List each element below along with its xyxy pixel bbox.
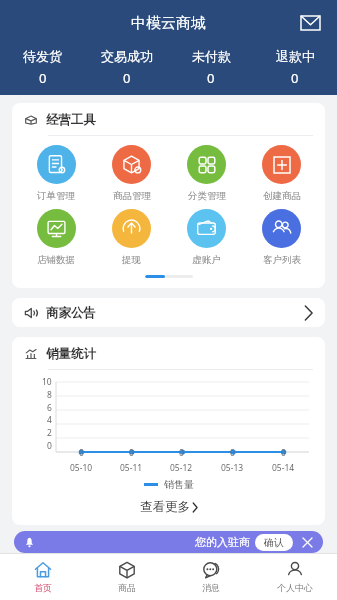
staticText: 店铺数据 — [37, 254, 75, 266]
button[interactable]: 商品管理 — [94, 145, 169, 202]
staticText: 0 — [291, 69, 299, 87]
button[interactable]: Messages — [293, 6, 327, 40]
button[interactable]: 查看更多 — [12, 497, 325, 517]
button[interactable]: 首页 — [0, 554, 85, 600]
staticText: 商品管理 — [113, 190, 151, 202]
staticText: 05-10 — [70, 462, 93, 474]
staticText: 待发货 — [23, 48, 62, 64]
staticText: 商品 — [118, 582, 136, 593]
button[interactable]: 您的入驻商 — [14, 531, 323, 553]
staticText: 消息 — [202, 582, 220, 593]
staticText: 您的入驻商 — [195, 535, 250, 549]
button[interactable]: 退款中 — [253, 48, 337, 87]
staticText: 6 — [47, 402, 52, 414]
button[interactable]: 确认 — [255, 534, 293, 551]
staticText: 提现 — [122, 254, 141, 266]
staticText: 客户列表 — [263, 254, 301, 266]
staticText: 05-12 — [170, 462, 193, 474]
staticText: 0 — [47, 440, 52, 452]
staticText: 确认 — [264, 536, 284, 549]
staticText: 交易成功 — [101, 48, 153, 64]
staticText: 0 — [39, 69, 47, 87]
staticText: 05-14 — [272, 462, 295, 474]
button[interactable]: 提现 — [94, 209, 169, 266]
button[interactable]: 个人中心 — [253, 554, 337, 600]
button[interactable]: 待发货 — [0, 48, 85, 87]
button[interactable]: 店铺数据 — [18, 209, 94, 266]
staticText: 首页 — [34, 582, 52, 593]
staticText: 05-11 — [120, 462, 143, 474]
button[interactable]: 交易成功 — [85, 48, 169, 87]
button[interactable]: 商品 — [85, 554, 169, 600]
button[interactable]: 分类管理 — [169, 145, 244, 202]
staticText: 0 — [179, 447, 184, 459]
staticText: 0 — [123, 69, 131, 87]
button[interactable]: Close — [299, 534, 315, 550]
button[interactable]: 客户列表 — [244, 209, 319, 266]
staticText: 查看更多 — [140, 499, 190, 515]
staticText: 0 — [79, 447, 84, 459]
staticText: 销售量 — [164, 478, 194, 491]
staticText: 虚账户 — [192, 254, 221, 266]
staticText: 销量统计 — [46, 346, 96, 362]
staticText: 中模云商城 — [131, 14, 206, 33]
button[interactable]: 虚账户 — [169, 209, 244, 266]
staticText: 10 — [42, 376, 52, 388]
button[interactable]: 消息 — [169, 554, 253, 600]
staticText: 个人中心 — [277, 582, 313, 593]
staticText: 0 — [129, 447, 134, 459]
button[interactable]: 未付款 — [169, 48, 253, 87]
staticText: 退款中 — [276, 48, 315, 64]
staticText: 经营工具 — [46, 112, 96, 128]
staticText: 0 — [230, 447, 235, 459]
staticText: 4 — [47, 414, 52, 426]
staticText: 05-13 — [221, 462, 244, 474]
staticText: 0 — [281, 447, 286, 459]
staticText: 未付款 — [192, 48, 231, 64]
staticText: 商家公告 — [46, 305, 96, 321]
staticText: 创建商品 — [263, 190, 301, 202]
staticText: 8 — [47, 389, 52, 401]
button[interactable]: 订单管理 — [18, 145, 94, 202]
button[interactable]: 创建商品 — [244, 145, 319, 202]
staticText: 订单管理 — [37, 190, 75, 202]
staticText: 2 — [47, 427, 52, 439]
staticText: 0 — [207, 69, 215, 87]
staticText: 分类管理 — [188, 190, 226, 202]
button[interactable]: 商家公告 — [12, 298, 325, 327]
